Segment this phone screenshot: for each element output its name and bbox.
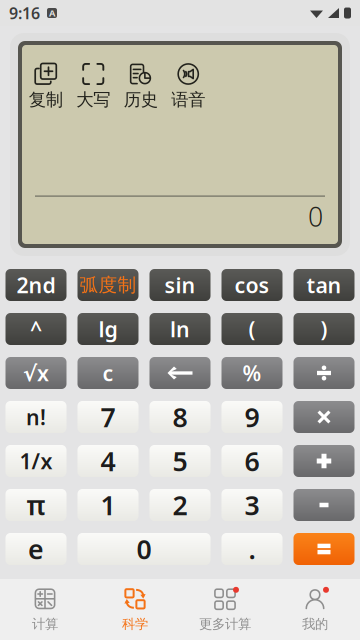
button[interactable]: 删除: [149, 357, 210, 389]
staticText: 科学: [122, 616, 148, 632]
button[interactable]: %: [221, 357, 282, 389]
button[interactable]: 我的: [270, 579, 360, 640]
staticText: 5: [172, 443, 187, 479]
staticText: (: [248, 315, 255, 343]
staticText: 8: [172, 399, 187, 435]
staticText: 我的: [302, 616, 328, 632]
staticText: 6: [244, 443, 259, 479]
button[interactable]: ln: [149, 313, 210, 345]
staticText: .: [248, 531, 255, 567]
staticText: e: [28, 531, 44, 567]
button[interactable]: 计算: [0, 579, 90, 640]
staticText: ): [320, 315, 327, 343]
staticText: √x: [23, 359, 49, 387]
button[interactable]: 4: [77, 445, 138, 477]
staticText: tan: [306, 271, 341, 299]
button[interactable]: 2: [149, 489, 210, 521]
staticText: 更多计算: [199, 616, 251, 632]
staticText: 1/x: [19, 447, 52, 475]
staticText: n!: [26, 403, 46, 431]
button[interactable]: 语音: [164, 63, 212, 110]
staticText: 历史: [124, 89, 158, 110]
button[interactable]: tan: [293, 269, 354, 301]
staticText: 7: [100, 399, 115, 435]
staticText: sin: [164, 271, 195, 299]
staticText: 2: [172, 487, 187, 523]
staticText: 9: [244, 399, 259, 435]
button[interactable]: ): [293, 313, 354, 345]
button[interactable]: 5: [149, 445, 210, 477]
staticText: ^: [30, 315, 42, 343]
staticText: 0: [308, 199, 323, 234]
button[interactable]: 6: [221, 445, 282, 477]
staticText: c: [102, 359, 113, 387]
staticText: 2nd: [16, 271, 55, 299]
button[interactable]: √x: [5, 357, 66, 389]
button[interactable]: .: [221, 533, 282, 565]
button[interactable]: 弧度制: [77, 269, 138, 301]
button[interactable]: n!: [5, 401, 66, 433]
button[interactable]: π: [5, 489, 66, 521]
button[interactable]: e: [5, 533, 66, 565]
button[interactable]: 0: [77, 533, 210, 565]
button[interactable]: 1/x: [5, 445, 66, 477]
staticText: A: [49, 7, 55, 19]
staticText: ln: [170, 315, 190, 343]
button[interactable]: 除: [293, 357, 354, 389]
button[interactable]: 历史: [117, 63, 164, 110]
button[interactable]: 加: [293, 445, 354, 477]
staticText: 语音: [171, 89, 205, 110]
staticText: lg: [98, 315, 117, 343]
staticText: %: [242, 359, 261, 387]
button[interactable]: 2nd: [5, 269, 66, 301]
button[interactable]: 减: [293, 489, 354, 521]
button[interactable]: (: [221, 313, 282, 345]
button[interactable]: 8: [149, 401, 210, 433]
staticText: 4: [100, 443, 115, 479]
button[interactable]: 等于: [293, 533, 354, 565]
button[interactable]: c: [77, 357, 138, 389]
staticText: 计算: [32, 616, 58, 632]
button[interactable]: 乘: [293, 401, 354, 433]
button[interactable]: 7: [77, 401, 138, 433]
button[interactable]: 3: [221, 489, 282, 521]
button[interactable]: 9: [221, 401, 282, 433]
staticText: 9:16: [9, 2, 40, 24]
staticText: cos: [234, 271, 269, 299]
staticText: π: [26, 487, 45, 523]
staticText: 3: [244, 487, 259, 523]
staticText: 大写: [76, 89, 110, 110]
button[interactable]: sin: [149, 269, 210, 301]
button[interactable]: lg: [77, 313, 138, 345]
staticText: 0: [136, 531, 151, 567]
button[interactable]: 大写: [69, 63, 117, 110]
button[interactable]: 科学: [90, 579, 180, 640]
button[interactable]: 复制: [22, 63, 69, 110]
staticText: 1: [100, 487, 115, 523]
button[interactable]: cos: [221, 269, 282, 301]
button[interactable]: ^: [5, 313, 66, 345]
button[interactable]: 1: [77, 489, 138, 521]
staticText: 弧度制: [79, 273, 136, 296]
staticText: 复制: [29, 89, 63, 110]
button[interactable]: 更多计算: [180, 579, 270, 640]
